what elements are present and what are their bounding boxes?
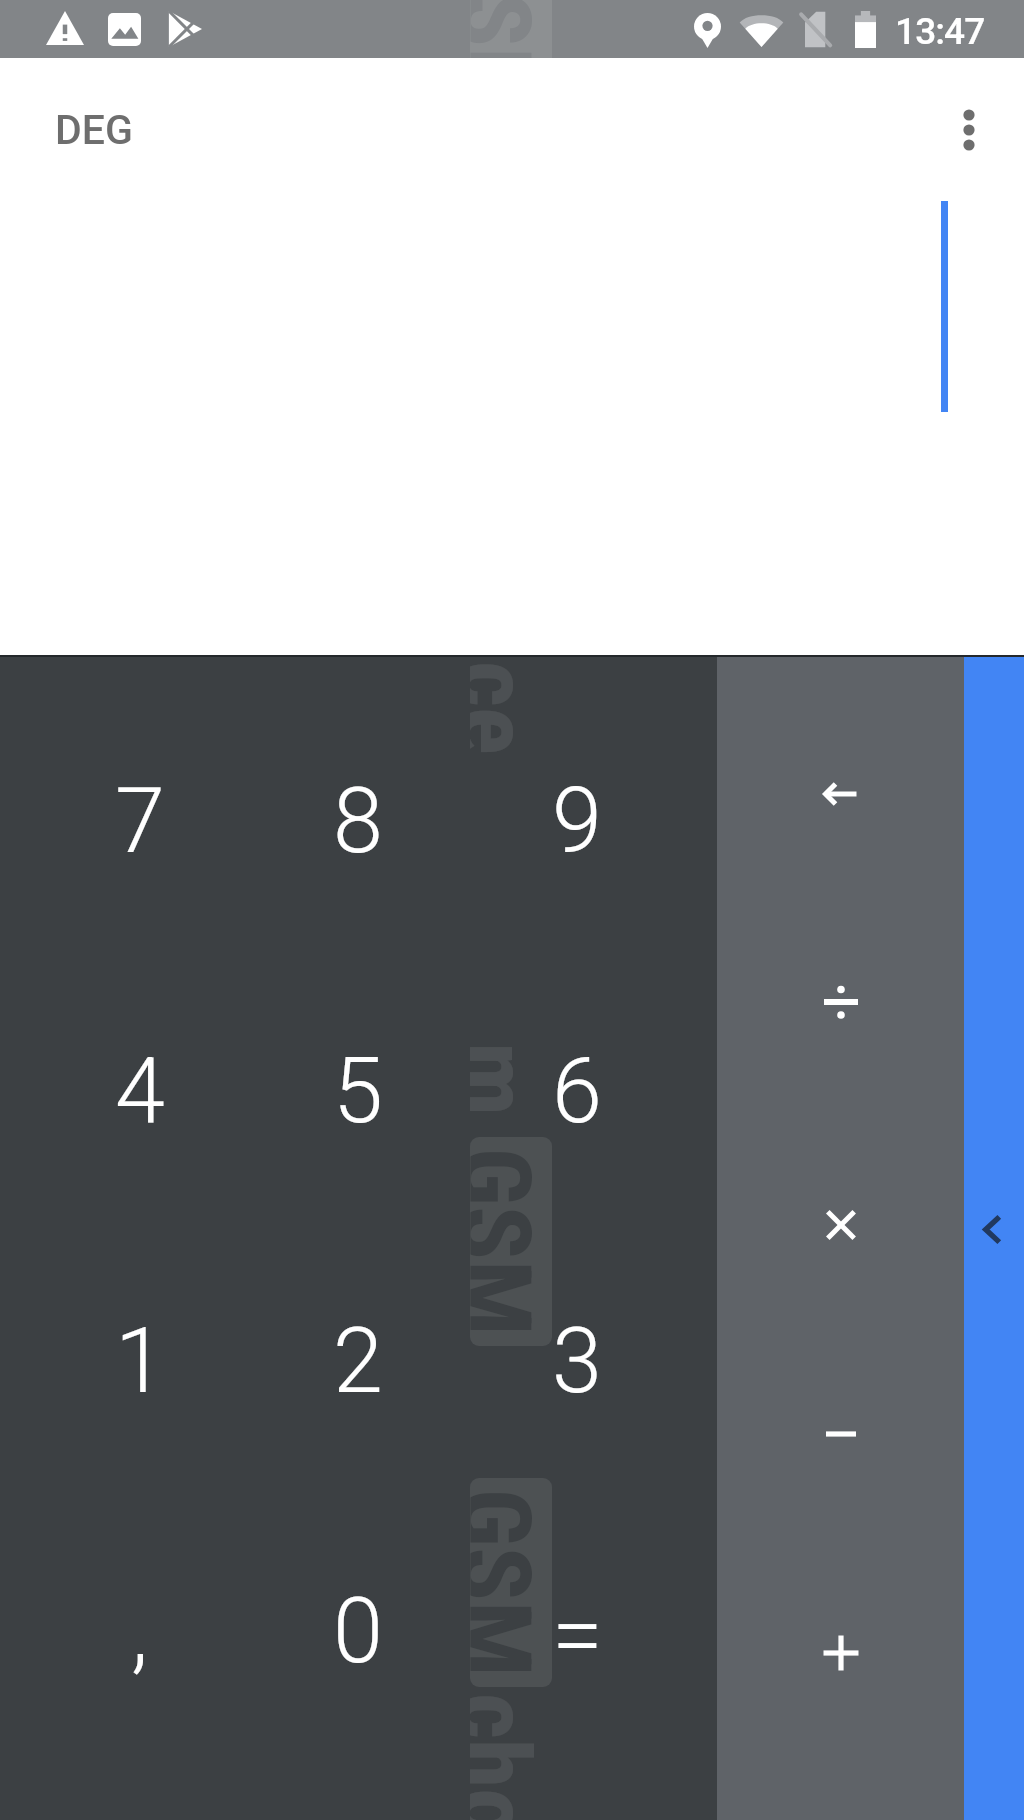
button[interactable]: 0 — [249, 1496, 467, 1766]
button[interactable]: Subtract — [717, 1326, 964, 1541]
staticText: , — [131, 1579, 149, 1684]
button[interactable]: 9 — [468, 686, 686, 956]
button[interactable]: Add — [717, 1545, 964, 1760]
button[interactable]: Divide — [717, 894, 964, 1109]
staticText: GSM — [470, 1147, 552, 1336]
staticText: 8 — [333, 769, 383, 874]
staticText: 0 — [333, 1579, 383, 1684]
button[interactable]: More options — [925, 86, 1013, 174]
button[interactable]: Multiply — [717, 1117, 964, 1332]
staticText: GSM — [470, 0, 552, 58]
button[interactable]: 1 — [31, 1226, 249, 1496]
staticText: 9 — [552, 769, 602, 874]
staticText: DEG — [55, 106, 133, 154]
button[interactable]: 8 — [249, 686, 467, 956]
button[interactable]: 6 — [468, 956, 686, 1226]
staticText: 7 — [115, 769, 165, 874]
button[interactable]: = — [468, 1496, 686, 1766]
staticText: = — [552, 1582, 603, 1690]
staticText: GSM — [470, 1488, 552, 1677]
staticText: cho — [470, 1693, 552, 1820]
staticText: ce — [470, 661, 552, 755]
staticText: 13:47 — [895, 10, 985, 53]
button[interactable]: 7 — [31, 686, 249, 956]
button[interactable]: DEG — [53, 106, 135, 154]
button[interactable]: 4 — [31, 956, 249, 1226]
staticText: 1 — [115, 1309, 165, 1414]
button[interactable]: Backspace — [717, 686, 964, 901]
button[interactable]: Open extra functions — [961, 1199, 1021, 1259]
button[interactable]: 2 — [249, 1226, 467, 1496]
staticText: 6 — [552, 1039, 602, 1144]
staticText: 5 — [333, 1039, 383, 1144]
staticText: 2 — [333, 1309, 383, 1414]
staticText: 4 — [115, 1039, 165, 1144]
button[interactable]: 3 — [468, 1226, 686, 1496]
button[interactable]: 5 — [249, 956, 467, 1226]
staticText: 3 — [552, 1309, 602, 1414]
button[interactable]: , — [31, 1496, 249, 1766]
staticText: m — [470, 1042, 552, 1112]
